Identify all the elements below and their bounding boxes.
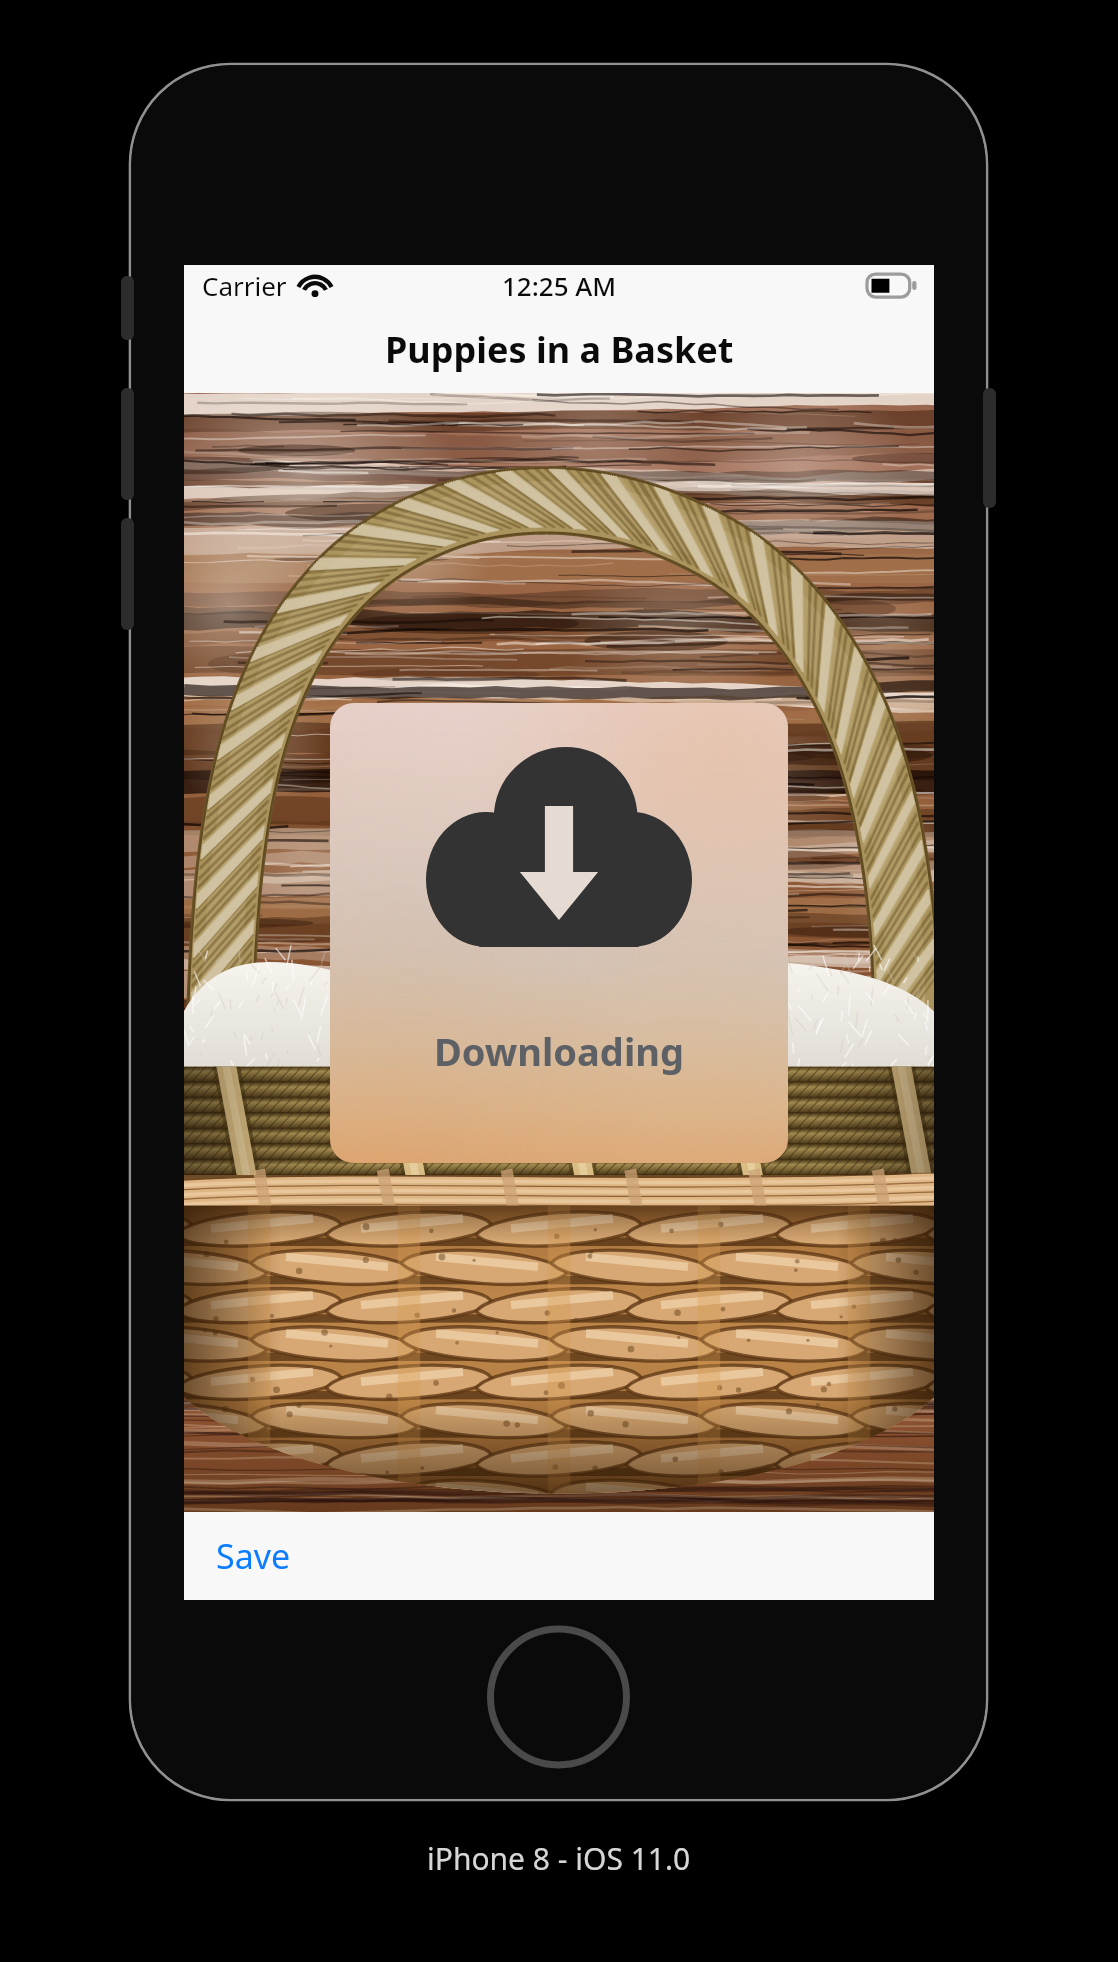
- other: Download in progress: [426, 747, 692, 947]
- button[interactable]: Save: [184, 1521, 323, 1591]
- staticText: Carrier: [202, 268, 287, 303]
- staticText: Puppies in a Basket: [385, 325, 734, 374]
- staticText: iPhone 8 - iOS 11.0: [427, 1838, 691, 1879]
- staticText: 12:25 AM: [502, 268, 617, 303]
- button[interactable]: Puppies in a Basket photo: [184, 393, 934, 1512]
- staticText: Downloading: [434, 1025, 684, 1077]
- staticText: Save: [216, 1533, 291, 1579]
